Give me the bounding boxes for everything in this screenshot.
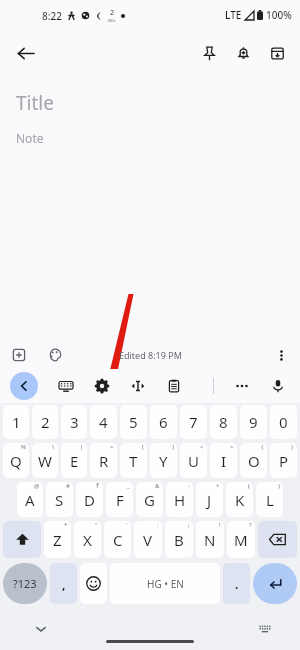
button[interactable]: ?123: [3, 563, 47, 604]
button[interactable]: 1: [3, 405, 29, 439]
button[interactable]: Color palette: [42, 342, 68, 368]
staticText: Note: [16, 130, 44, 146]
button[interactable]: Reminder: [226, 36, 260, 70]
button[interactable]: P: [270, 443, 297, 478]
staticText: T: [129, 451, 138, 471]
button[interactable]: 4: [90, 405, 117, 439]
button[interactable]: W: [32, 443, 58, 478]
button[interactable]: Hide keyboard: [28, 616, 54, 642]
staticText: U: [188, 451, 199, 471]
button[interactable]: 6: [150, 405, 177, 439]
button[interactable]: Z: [44, 521, 71, 558]
button[interactable]: I: [210, 443, 237, 478]
button[interactable]: Y: [150, 443, 177, 478]
staticText: 1: [12, 412, 21, 432]
button[interactable]: Back: [8, 36, 42, 70]
button[interactable]: B: [165, 521, 193, 558]
staticText: I: [221, 451, 227, 471]
staticText: S: [55, 490, 64, 510]
staticText: F: [116, 490, 124, 510]
button[interactable]: S: [46, 482, 73, 517]
button[interactable]: Q: [3, 443, 29, 478]
staticText: Title: [16, 90, 54, 116]
staticText: K: [235, 490, 245, 510]
button[interactable]: Back: [10, 372, 38, 400]
button[interactable]: 7: [180, 405, 207, 439]
button[interactable]: X: [74, 521, 101, 558]
staticText: KB/s: [108, 18, 116, 23]
staticText: HG • EN: [147, 577, 184, 591]
button[interactable]: G: [136, 482, 163, 517]
button[interactable]: R: [90, 443, 117, 478]
button[interactable]: More: [228, 372, 256, 400]
staticText: ): [278, 482, 280, 490]
button[interactable]: Shift: [3, 521, 41, 558]
staticText: B: [174, 530, 184, 550]
button[interactable]: 0: [270, 405, 297, 439]
button[interactable]: Archive: [260, 36, 294, 70]
button[interactable]: Keyboard: [52, 372, 80, 400]
button[interactable]: D: [76, 482, 103, 517]
button[interactable]: Period: [223, 563, 250, 604]
button[interactable]: Switch keyboard: [252, 616, 278, 642]
staticText: 2: [110, 8, 115, 18]
button[interactable]: More options: [268, 342, 294, 368]
staticText: E: [70, 451, 79, 471]
button[interactable]: J: [196, 482, 223, 517]
staticText: <: [200, 443, 204, 451]
button[interactable]: Pin: [192, 36, 226, 70]
staticText: J: [207, 490, 212, 510]
button[interactable]: Enter: [253, 563, 297, 604]
staticText: 6: [159, 412, 168, 432]
staticText: X: [83, 530, 92, 550]
button[interactable]: L: [256, 482, 283, 517]
button[interactable]: F: [106, 482, 133, 517]
button[interactable]: Backspace: [258, 521, 297, 558]
button[interactable]: H: [166, 482, 193, 517]
button[interactable]: V: [134, 521, 162, 558]
staticText: Edited 8:19 PM: [119, 349, 182, 361]
staticText: L: [266, 490, 274, 510]
button[interactable]: Settings: [88, 372, 116, 400]
button[interactable]: Emoji: [80, 563, 107, 604]
button[interactable]: HG • EN: [110, 563, 220, 604]
staticText: (: [248, 482, 250, 490]
button[interactable]: A: [17, 482, 43, 517]
button[interactable]: 9: [240, 405, 267, 439]
staticText: >: [230, 443, 234, 451]
staticText: D: [84, 490, 95, 510]
staticText: ,: [62, 576, 66, 592]
button[interactable]: T: [120, 443, 147, 478]
staticText: 4: [99, 412, 108, 432]
button[interactable]: Clipboard: [160, 372, 188, 400]
staticText: @: [34, 482, 40, 490]
staticText: Z: [53, 530, 62, 550]
button[interactable]: O: [240, 443, 267, 478]
button[interactable]: E: [61, 443, 87, 478]
staticText: ?: [249, 521, 252, 529]
button[interactable]: U: [180, 443, 207, 478]
button[interactable]: Voice input: [264, 372, 292, 400]
button[interactable]: 5: [120, 405, 147, 439]
staticText: 100%: [266, 8, 292, 22]
staticText: V: [143, 530, 153, 550]
button[interactable]: C: [104, 521, 131, 558]
button[interactable]: N: [196, 521, 224, 558]
button[interactable]: K: [226, 482, 253, 517]
staticText: }: [291, 443, 294, 451]
button[interactable]: 3: [61, 405, 87, 439]
staticText: *: [64, 521, 68, 529]
staticText: H: [174, 490, 186, 510]
button[interactable]: 2: [32, 405, 58, 439]
button[interactable]: 8: [210, 405, 237, 439]
button[interactable]: Text editing: [124, 372, 152, 400]
staticText: ]: [172, 443, 174, 451]
staticText: LTE: [225, 8, 242, 22]
staticText: Q: [10, 451, 22, 471]
button[interactable]: Comma: [50, 563, 77, 604]
staticText: _: [127, 482, 130, 490]
staticText: =: [110, 443, 114, 451]
staticText: |: [80, 443, 84, 451]
button[interactable]: Add: [6, 342, 32, 368]
button[interactable]: M: [227, 521, 255, 558]
